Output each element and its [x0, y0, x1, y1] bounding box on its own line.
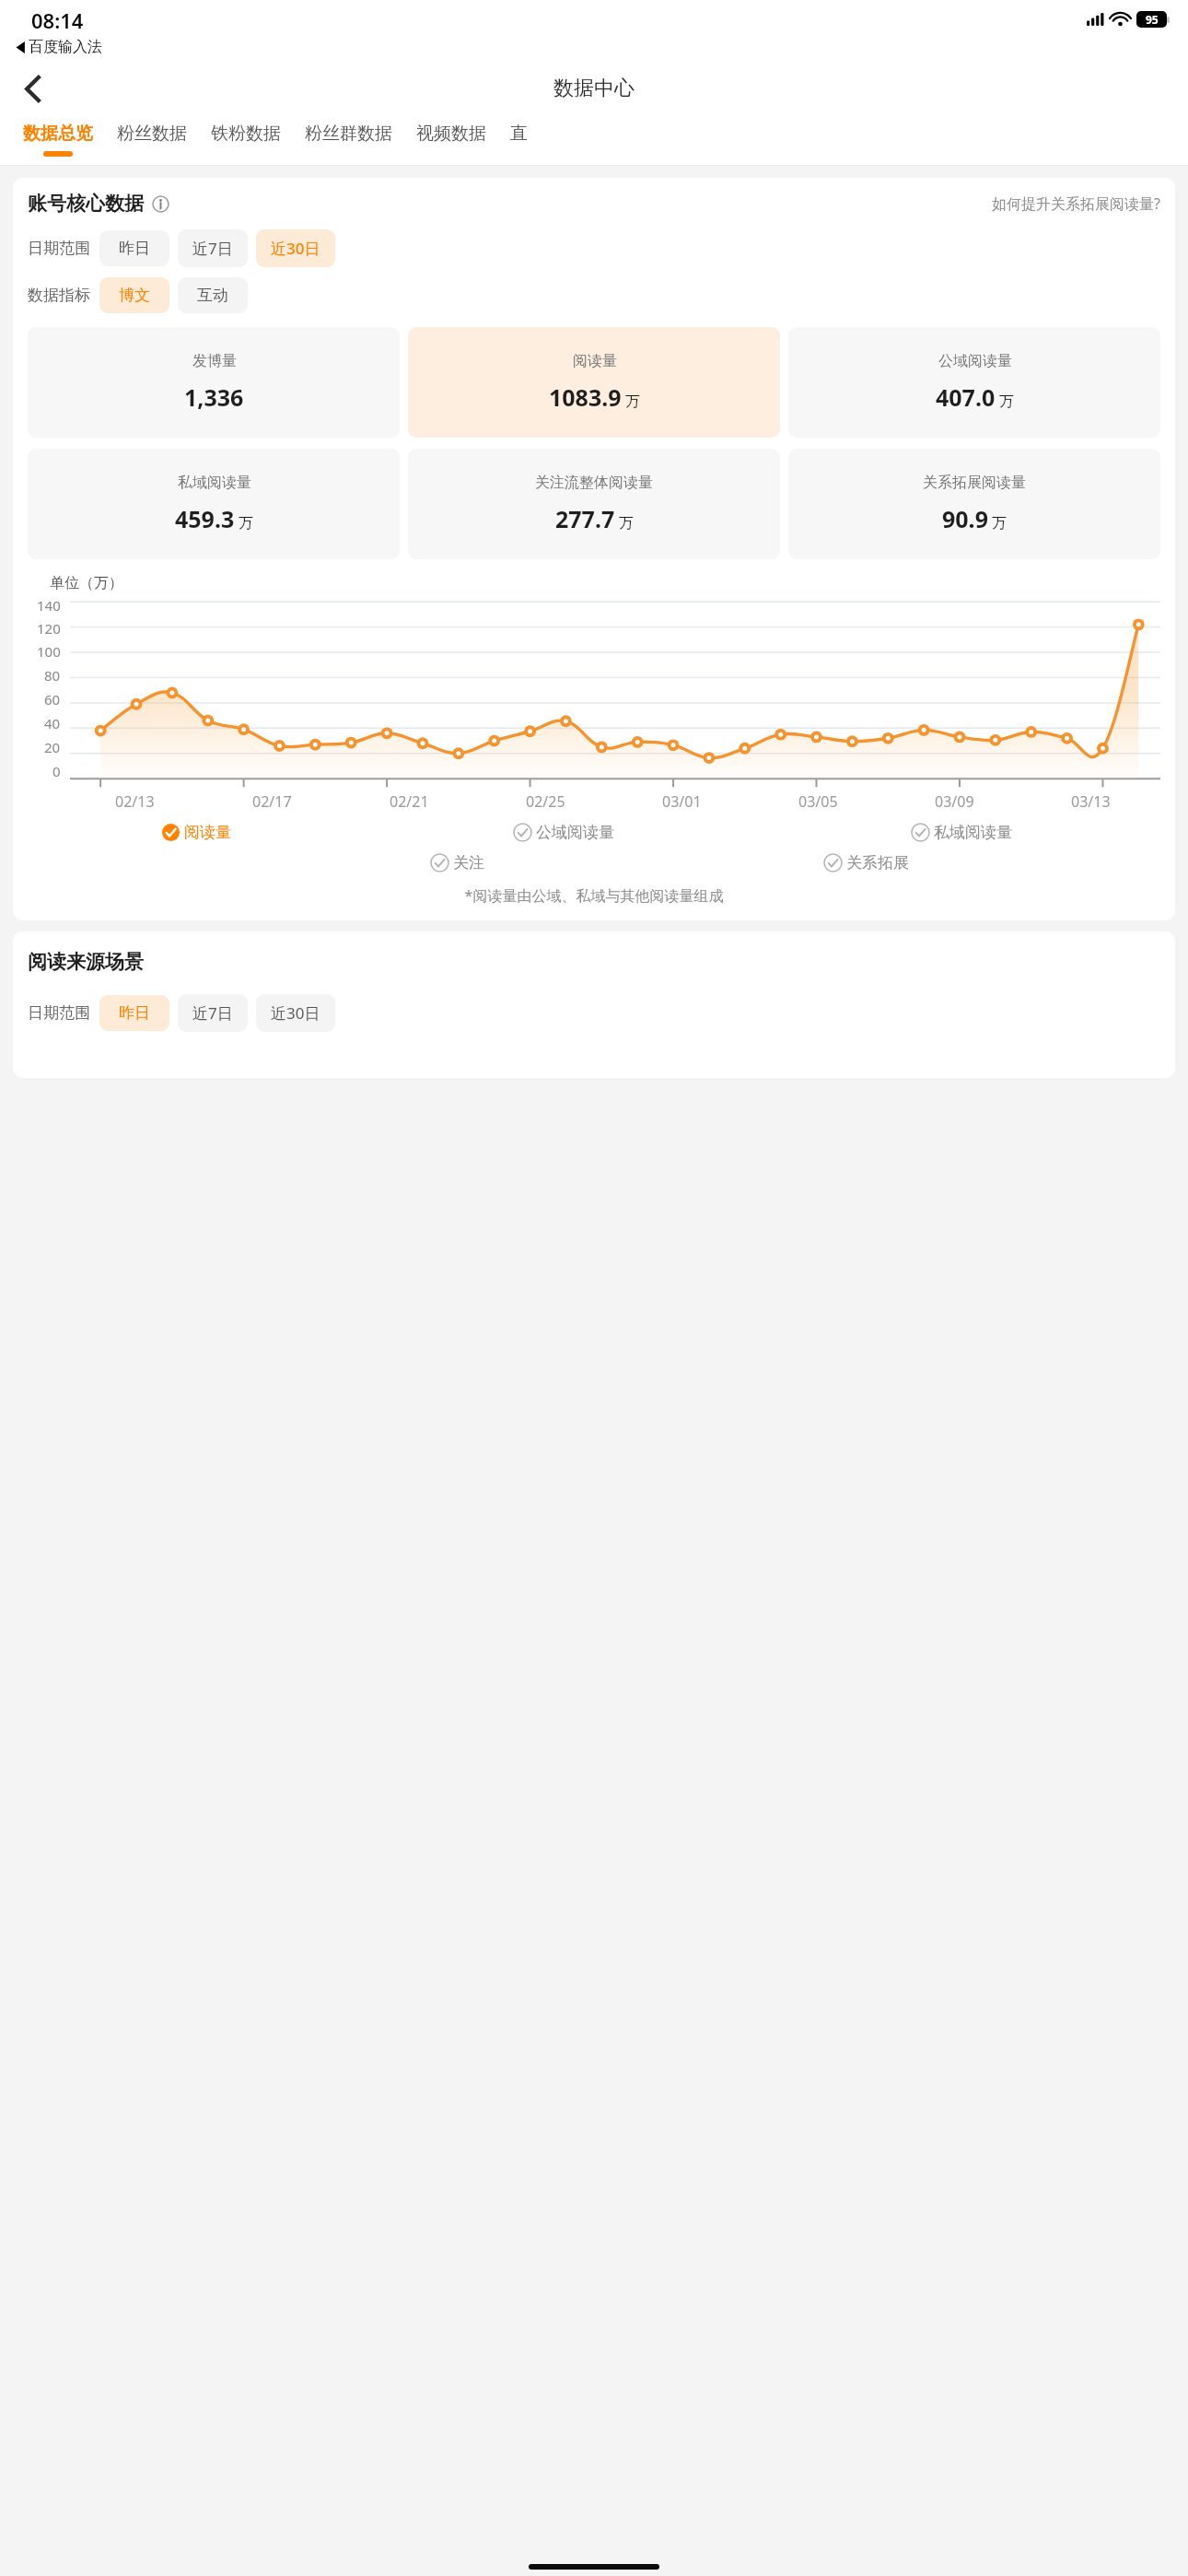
staticText: 02/25: [526, 791, 565, 812]
staticText: 1083.9: [549, 381, 622, 413]
staticText: 03/05: [798, 791, 838, 812]
staticText: 万: [992, 514, 1007, 533]
staticText: 阅读量: [573, 352, 617, 370]
button[interactable]: 近7日: [178, 229, 248, 267]
button[interactable]: 粉丝数据: [105, 120, 199, 166]
staticText: 近7日: [192, 238, 233, 259]
staticText: 昨日: [119, 1003, 150, 1023]
staticText: 私域阅读量: [178, 474, 251, 492]
staticText: 博文: [119, 286, 150, 305]
button[interactable]: 关系拓展: [661, 853, 1070, 872]
staticText: 阅读来源场景: [28, 950, 144, 974]
staticText: 万: [239, 514, 253, 533]
staticText: 万: [999, 392, 1014, 411]
button[interactable]: 近30日: [256, 229, 335, 267]
staticText: 03/01: [662, 791, 702, 812]
staticText: 阅读量: [184, 823, 231, 842]
staticText: 日期范围: [28, 239, 90, 258]
staticText: 277.7: [555, 503, 615, 534]
staticText: 关注流整体阅读量: [535, 474, 653, 492]
staticText: 459.3: [175, 503, 235, 534]
button[interactable]: 私域阅读量: [763, 823, 1160, 842]
button[interactable]: 关注流整体阅读量: [408, 449, 780, 559]
staticText: 日期范围: [28, 1003, 90, 1023]
staticText: 100: [37, 642, 61, 661]
staticText: 60: [44, 690, 61, 708]
staticText: 95: [1146, 12, 1159, 27]
button[interactable]: 私域阅读量: [28, 449, 400, 559]
button[interactable]: 近30日: [256, 994, 335, 1032]
staticText: 账号核心数据: [28, 192, 144, 216]
button[interactable]: Info: [150, 193, 170, 214]
staticText: 万: [625, 392, 640, 411]
staticText: 120: [37, 619, 61, 638]
staticText: 视频数据: [416, 123, 486, 145]
staticText: 数据中心: [553, 76, 635, 101]
button[interactable]: 数据总览: [11, 120, 105, 166]
button[interactable]: 铁粉数据: [199, 120, 293, 166]
staticText: 粉丝数据: [117, 123, 187, 145]
button[interactable]: 关注: [252, 853, 661, 872]
staticText: 03/13: [1071, 791, 1111, 812]
staticText: 近7日: [192, 1002, 233, 1024]
staticText: 关系拓展阅读量: [923, 474, 1026, 492]
staticText: 公域阅读量: [536, 823, 614, 842]
staticText: 40: [44, 714, 61, 732]
staticText: 数据总览: [23, 123, 93, 145]
staticText: 90.9: [942, 503, 988, 534]
staticText: 直: [510, 123, 528, 145]
staticText: 粉丝群数据: [305, 123, 392, 145]
staticText: 发博量: [192, 352, 237, 370]
button[interactable]: 昨日: [99, 995, 169, 1031]
button[interactable]: 关系拓展阅读量: [788, 449, 1160, 559]
staticText: 近30日: [271, 1002, 320, 1024]
button[interactable]: 昨日: [99, 230, 169, 266]
staticText: 08:14: [31, 6, 84, 34]
staticText: 20: [44, 738, 61, 756]
staticText: *阅读量由公域、私域与其他阅读量组成: [28, 885, 1160, 906]
staticText: 03/09: [935, 791, 974, 812]
staticText: 互动: [197, 286, 228, 305]
button[interactable]: 发博量: [28, 327, 400, 438]
staticText: 私域阅读量: [934, 823, 1012, 842]
staticText: 百度输入法: [29, 38, 102, 56]
staticText: 铁粉数据: [211, 123, 281, 145]
button[interactable]: 公域阅读量: [788, 327, 1160, 438]
button[interactable]: 直: [498, 120, 540, 166]
staticText: 02/17: [252, 791, 292, 812]
staticText: 0: [52, 762, 61, 780]
staticText: 140: [37, 596, 61, 615]
button[interactable]: 如何提升关系拓展阅读量?: [992, 193, 1160, 214]
button[interactable]: 公域阅读量: [365, 823, 763, 842]
staticText: 万: [619, 514, 634, 533]
staticText: 公域阅读量: [938, 352, 1012, 370]
staticText: 关系拓展: [846, 853, 909, 872]
staticText: 数据指标: [28, 286, 90, 305]
staticText: 关注: [453, 853, 484, 872]
button[interactable]: 博文: [99, 277, 169, 313]
staticText: 1,336: [184, 381, 244, 413]
staticText: 80: [44, 666, 61, 685]
staticText: 02/21: [390, 791, 429, 812]
button[interactable]: Back: [7, 64, 57, 113]
button[interactable]: 阅读量: [28, 823, 365, 842]
button[interactable]: 近7日: [178, 994, 248, 1032]
button[interactable]: 视频数据: [404, 120, 498, 166]
staticText: 近30日: [271, 238, 320, 259]
button[interactable]: 互动: [178, 277, 248, 313]
button[interactable]: 阅读量: [408, 327, 780, 438]
staticText: 昨日: [119, 239, 150, 258]
staticText: 02/13: [115, 791, 155, 812]
staticText: 407.0: [936, 381, 996, 413]
button[interactable]: 粉丝群数据: [293, 120, 404, 166]
staticText: 单位（万）: [50, 574, 123, 592]
